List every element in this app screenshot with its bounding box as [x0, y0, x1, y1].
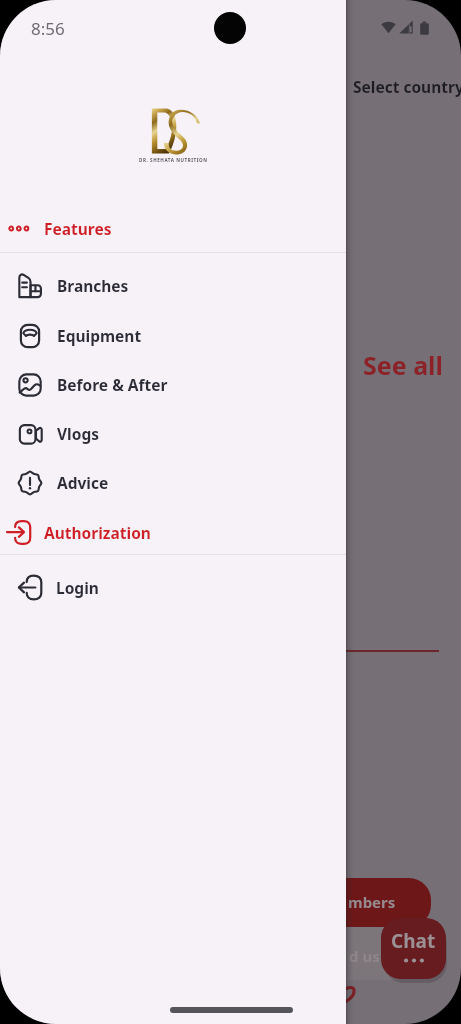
button[interactable]: Features: [0, 204, 346, 253]
button[interactable]: Login: [0, 563, 346, 612]
button[interactable]: Vlogs: [0, 409, 346, 458]
staticText: Vlogs: [57, 423, 99, 444]
button[interactable]: Authorization: [0, 508, 346, 557]
staticText: Chat: [391, 928, 436, 954]
staticText: Select country: [353, 76, 461, 97]
button[interactable]: Advice: [0, 458, 346, 507]
button[interactable]: Branches: [0, 261, 346, 310]
staticText: Login: [56, 577, 99, 598]
staticText: 8:56: [31, 17, 65, 40]
button[interactable]: Chat: [381, 918, 446, 979]
staticText: d us: [349, 946, 380, 966]
button[interactable]: Equipment: [0, 311, 346, 360]
staticText: Branches: [57, 275, 129, 296]
staticText: Advice: [57, 472, 109, 493]
staticText: mbers: [348, 892, 396, 912]
staticText: Features: [44, 218, 112, 239]
button[interactable]: mbers: [290, 878, 431, 927]
staticText: Equipment: [57, 325, 142, 346]
staticText: Authorization: [44, 522, 151, 543]
button[interactable]: Before & After: [0, 360, 346, 409]
staticText: Before & After: [57, 374, 168, 395]
staticText: See all: [363, 348, 444, 382]
staticText: DR. SHEHATA NUTRITION: [139, 157, 208, 163]
